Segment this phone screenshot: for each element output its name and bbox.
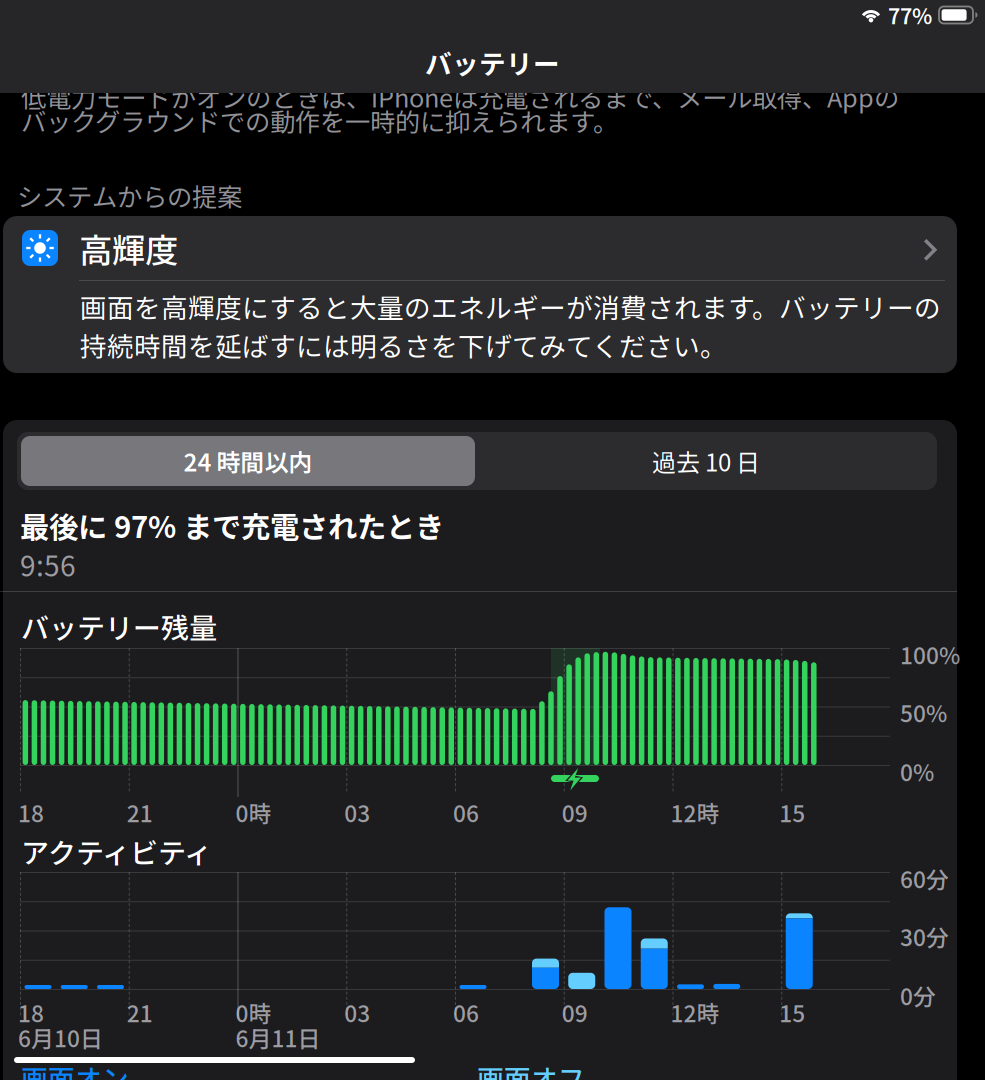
staticText: 21 bbox=[127, 796, 153, 829]
staticText: 09 bbox=[562, 796, 588, 829]
staticText: 24 時間以内 bbox=[183, 444, 312, 478]
staticText: 0% bbox=[900, 755, 934, 788]
staticText: 画面オン bbox=[21, 1058, 129, 1080]
staticText: 6月10日 bbox=[18, 1021, 103, 1054]
staticText: バッテリー残量 bbox=[21, 606, 217, 646]
staticText: 12時 bbox=[670, 796, 719, 829]
button[interactable]: 過去 10 日 bbox=[479, 436, 933, 486]
staticText: 低電力モードがオンのときは、iPhoneは充電されるまで、メール取得、Appの bbox=[21, 78, 899, 115]
staticText: 画面を高輝度にすると大量のエネルギーが消費されます。バッテリーの持続時間を延ばす… bbox=[80, 287, 941, 364]
staticText: 15 bbox=[779, 796, 805, 829]
button[interactable]: 24 時間以内 bbox=[21, 436, 475, 486]
staticText: 0分 bbox=[900, 979, 936, 1012]
staticText: 最後に 97% まで充電されたとき bbox=[20, 504, 444, 546]
staticText: 77% bbox=[888, 0, 932, 30]
staticText: 過去 10 日 bbox=[652, 444, 760, 478]
staticText: 50% bbox=[900, 696, 947, 729]
staticText: アクティビティ bbox=[21, 831, 212, 871]
staticText: 0時 bbox=[235, 996, 271, 1029]
staticText: 09 bbox=[562, 996, 588, 1029]
staticText: 18 bbox=[18, 796, 44, 829]
staticText: 12時 bbox=[670, 996, 719, 1029]
staticText: 06 bbox=[453, 796, 479, 829]
staticText: 21 bbox=[127, 996, 153, 1029]
staticText: 画面オフ bbox=[477, 1058, 585, 1080]
staticText: 06 bbox=[453, 996, 479, 1029]
staticText: システムからの提案 bbox=[17, 177, 242, 214]
staticText: 9:56 bbox=[20, 544, 76, 584]
staticText: バッテリー bbox=[425, 43, 560, 82]
staticText: 0時 bbox=[235, 796, 271, 829]
staticText: 30分 bbox=[900, 920, 949, 953]
staticText: 高輝度 bbox=[79, 224, 178, 272]
staticText: 15 bbox=[779, 996, 805, 1029]
staticText: 6月11日 bbox=[235, 1021, 320, 1054]
staticText: 03 bbox=[344, 796, 370, 829]
button[interactable]: 高輝度 bbox=[3, 216, 957, 373]
staticText: 60分 bbox=[900, 862, 949, 895]
staticText: バックグラウンドでの動作を一時的に抑えられます。 bbox=[21, 102, 618, 139]
staticText: 100% bbox=[900, 638, 960, 671]
staticText: 18 bbox=[18, 996, 44, 1029]
staticText: 03 bbox=[344, 996, 370, 1029]
